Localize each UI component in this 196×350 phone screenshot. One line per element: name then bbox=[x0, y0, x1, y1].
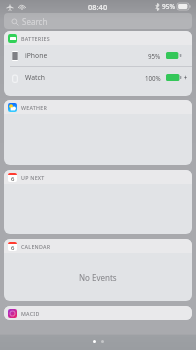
staticText: 95% bbox=[162, 2, 175, 11]
button[interactable]: MACID bbox=[4, 306, 192, 320]
staticText: Watch bbox=[25, 73, 45, 82]
button[interactable]: Watch bbox=[4, 67, 192, 88]
button[interactable]: BATTERIES bbox=[4, 31, 192, 45]
staticText: BATTERIES bbox=[21, 35, 50, 42]
staticText: 6 bbox=[11, 244, 15, 251]
staticText: 6 bbox=[11, 175, 15, 182]
staticText: 100% bbox=[145, 74, 161, 82]
staticText: No Events bbox=[79, 272, 117, 283]
staticText: 95% bbox=[148, 52, 161, 60]
button[interactable]: iPhone bbox=[4, 45, 192, 66]
staticText: CALENDAR bbox=[21, 243, 51, 250]
staticText: 08:40 bbox=[88, 2, 108, 12]
staticText: MACID bbox=[21, 310, 40, 317]
button[interactable]: WEATHER bbox=[4, 100, 192, 114]
button[interactable]: 6 bbox=[4, 239, 192, 253]
button[interactable]: 6 bbox=[4, 170, 192, 184]
staticText: Search bbox=[22, 16, 48, 27]
staticText: WEATHER bbox=[21, 104, 48, 111]
button[interactable]: Search bbox=[4, 13, 192, 29]
staticText: UP NEXT bbox=[21, 174, 45, 181]
staticText: iPhone bbox=[25, 51, 48, 60]
